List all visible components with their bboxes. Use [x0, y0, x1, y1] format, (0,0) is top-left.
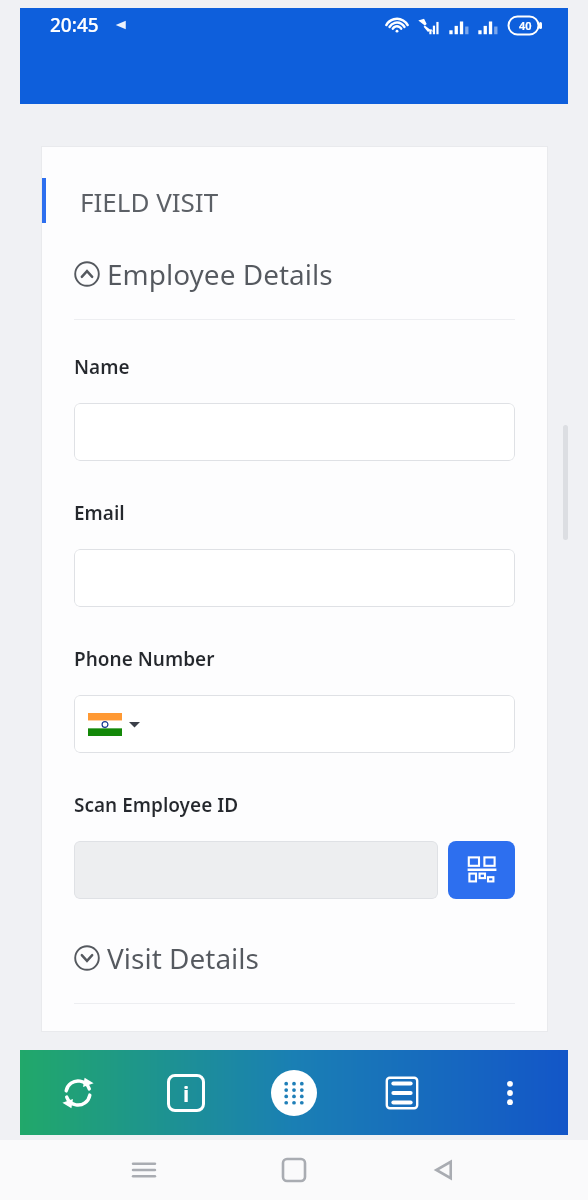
staticText: Phone Number [74, 646, 215, 672]
button[interactable]: Keypad [258, 1050, 330, 1135]
staticText: Employee Details [107, 255, 333, 293]
staticText: Name [74, 354, 130, 380]
staticText: Visit Details [107, 939, 259, 977]
button[interactable]: More options [474, 1050, 546, 1135]
staticText: i [183, 1078, 190, 1108]
button[interactable] [74, 695, 515, 753]
staticText: Email [74, 500, 125, 526]
staticText: 20:45 [50, 12, 99, 38]
staticText: 40 [519, 18, 532, 33]
button[interactable]: Back [420, 1146, 468, 1194]
button[interactable] [74, 403, 515, 461]
button[interactable]: Employee Details [74, 255, 515, 293]
button[interactable]: Home [270, 1146, 318, 1194]
button[interactable]: Refresh [42, 1050, 114, 1135]
button[interactable]: Information [150, 1050, 222, 1135]
staticText: FIELD VISIT [80, 184, 219, 219]
button[interactable]: List [366, 1050, 438, 1135]
button[interactable]: Visit Details [74, 939, 515, 977]
staticText: Scan Employee ID [74, 792, 239, 818]
button[interactable]: Scan QR code [448, 841, 515, 899]
button[interactable] [74, 549, 515, 607]
button[interactable]: Recents [120, 1146, 168, 1194]
